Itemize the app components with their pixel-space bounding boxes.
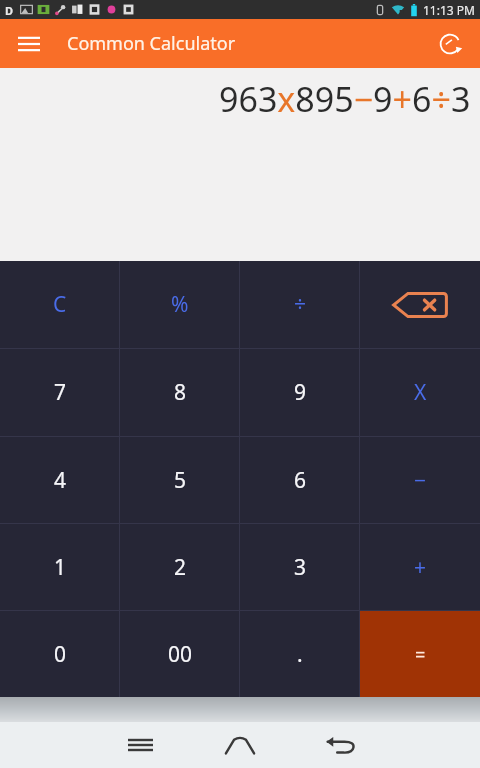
staticText: D: [5, 3, 14, 16]
button[interactable]: 8: [120, 349, 240, 436]
staticText: +: [414, 553, 427, 582]
staticText: .: [297, 640, 303, 669]
button[interactable]: 4: [0, 437, 120, 523]
button[interactable]: Backspace: [360, 261, 480, 348]
staticText: 0: [54, 640, 67, 669]
staticText: 963x895−9+6÷3: [219, 76, 471, 122]
button[interactable]: 1: [0, 524, 120, 610]
button[interactable]: 9: [240, 349, 360, 436]
staticText: 7: [54, 378, 67, 407]
button[interactable]: C: [0, 261, 120, 348]
staticText: =: [415, 642, 426, 667]
button[interactable]: Reset: [429, 23, 471, 65]
button[interactable]: +: [360, 524, 480, 610]
staticText: 5: [174, 466, 187, 495]
button[interactable]: 6: [240, 437, 360, 523]
staticText: Common Calculator: [67, 31, 236, 56]
button[interactable]: 7: [0, 349, 120, 436]
button[interactable]: .: [240, 611, 360, 697]
staticText: ÷: [294, 290, 307, 319]
staticText: X: [414, 378, 427, 407]
button[interactable]: 3: [240, 524, 360, 610]
staticText: %: [171, 290, 189, 319]
staticText: C: [53, 290, 67, 319]
staticText: 4: [54, 466, 67, 495]
button[interactable]: =: [360, 611, 480, 697]
button[interactable]: Back: [290, 722, 390, 768]
staticText: 9: [294, 378, 307, 407]
staticText: 6: [294, 466, 307, 495]
staticText: −: [414, 466, 427, 495]
staticText: 2: [174, 553, 187, 582]
button[interactable]: ÷: [240, 261, 360, 348]
button[interactable]: X: [360, 349, 480, 436]
button[interactable]: 00: [120, 611, 240, 697]
button[interactable]: Open navigation menu: [8, 23, 50, 65]
staticText: 3: [294, 553, 307, 582]
button[interactable]: 5: [120, 437, 240, 523]
button[interactable]: %: [120, 261, 240, 348]
staticText: 00: [168, 640, 193, 669]
button[interactable]: 2: [120, 524, 240, 610]
button[interactable]: 0: [0, 611, 120, 697]
staticText: 11:13 PM: [423, 2, 475, 18]
staticText: 8: [174, 378, 187, 407]
staticText: 1: [54, 553, 67, 582]
button[interactable]: Home: [190, 722, 290, 768]
button[interactable]: −: [360, 437, 480, 523]
button[interactable]: Recent apps: [90, 722, 190, 768]
